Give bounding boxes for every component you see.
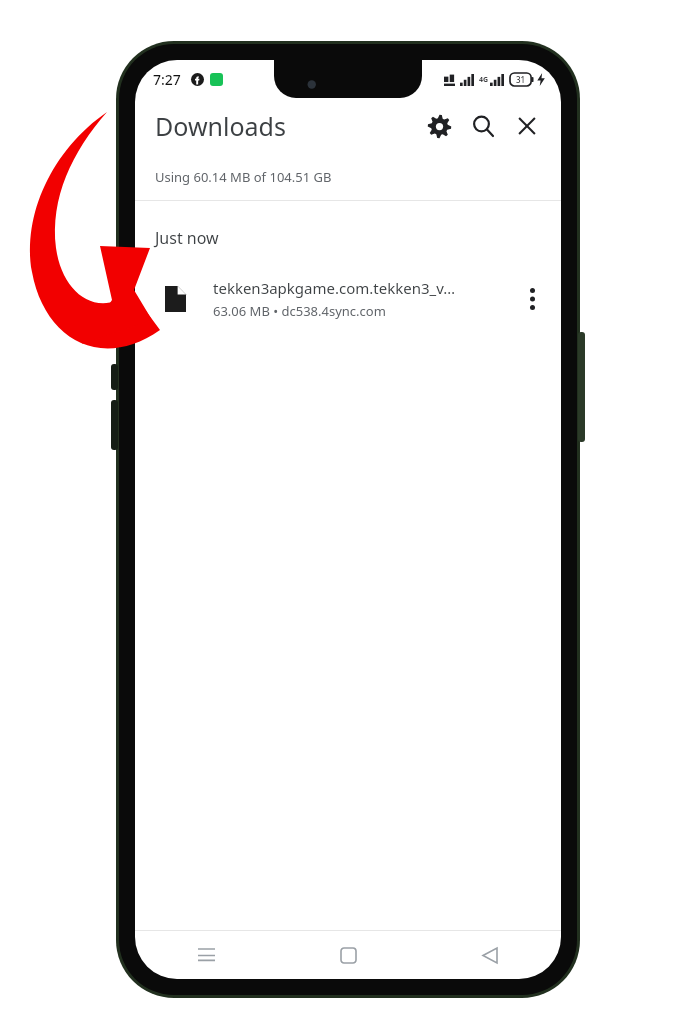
button[interactable]: Home	[277, 931, 419, 979]
button[interactable]: Search	[461, 104, 505, 148]
button[interactable]: Settings	[417, 104, 461, 148]
button[interactable]: Close	[505, 104, 549, 148]
button[interactable]: More options	[511, 278, 553, 320]
staticText: Just now	[155, 227, 219, 249]
staticText: tekken3apkgame.com.tekken3_v…	[213, 278, 456, 298]
staticText: 7:27	[153, 70, 181, 89]
button[interactable]: Recent apps	[135, 931, 277, 979]
button[interactable]: tekken3apkgame.com.tekken3_v…	[135, 267, 561, 331]
button[interactable]: Back	[419, 931, 561, 979]
staticText: 31	[516, 74, 526, 85]
staticText: Downloads	[155, 109, 286, 143]
staticText: Using 60.14 MB of 104.51 GB	[155, 168, 332, 186]
staticText: 63.06 MB • dc538.4sync.com	[213, 302, 386, 320]
staticText: 4G	[479, 75, 489, 85]
